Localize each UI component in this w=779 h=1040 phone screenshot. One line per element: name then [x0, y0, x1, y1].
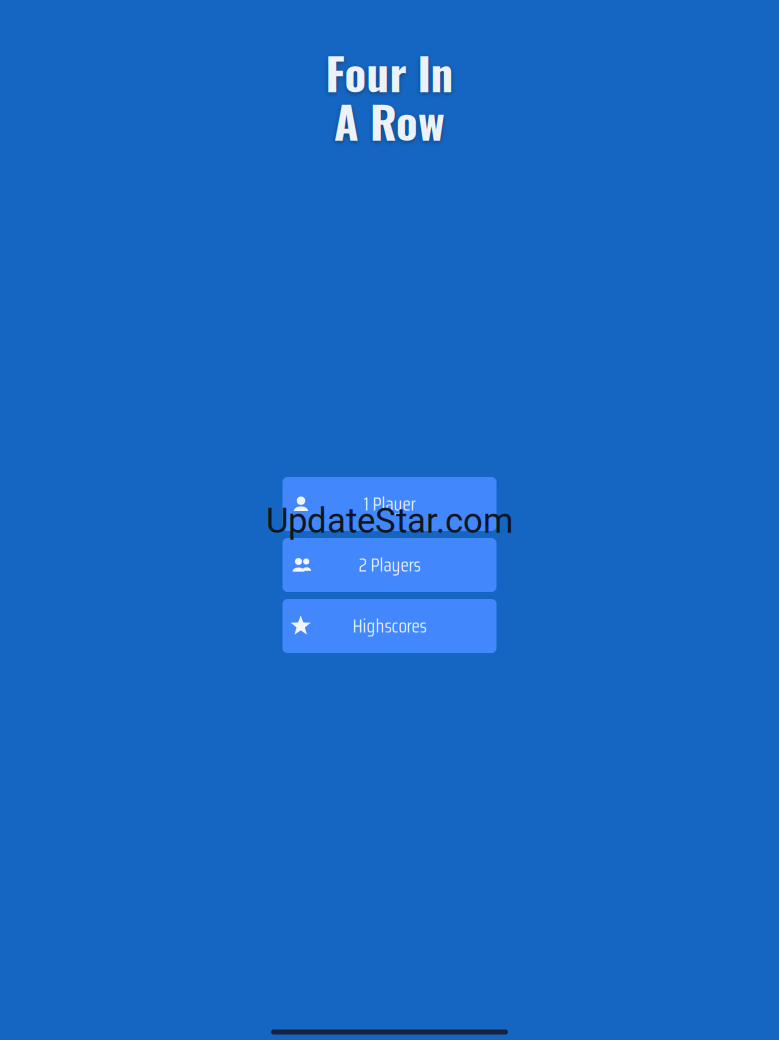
staticText: 2 Players: [358, 550, 420, 580]
button[interactable]: 1 Player: [282, 477, 496, 531]
button[interactable]: Highscores: [282, 599, 496, 653]
staticText: UpdateStar.com: [266, 501, 513, 541]
staticText: A Row: [334, 87, 445, 154]
staticText: 1 Player: [363, 489, 415, 519]
button[interactable]: 2 Players: [282, 538, 496, 592]
staticText: Highscores: [352, 611, 426, 641]
staticText: Four In: [325, 39, 453, 105]
